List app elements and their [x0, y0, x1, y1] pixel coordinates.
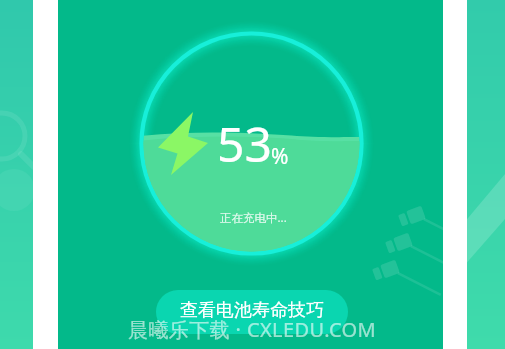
staticText: 正在充电中...	[220, 210, 287, 226]
staticText: 查看电池寿命技巧	[180, 299, 324, 322]
staticText: %	[271, 142, 289, 171]
staticText: 53	[217, 111, 272, 176]
button[interactable]: 查看电池寿命技巧	[156, 290, 348, 334]
staticText: 晨曦乐下载 · CXLEDU.COM	[128, 316, 377, 343]
